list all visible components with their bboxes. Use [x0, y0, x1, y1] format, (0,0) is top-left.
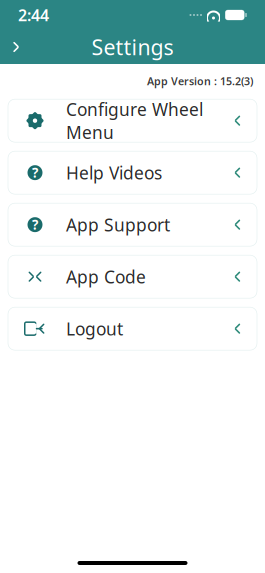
button[interactable]: Back	[0, 30, 32, 64]
staticText: 2:44	[18, 4, 49, 26]
button[interactable]: ?	[8, 151, 257, 194]
button[interactable]: Configure Wheel Menu	[8, 99, 257, 142]
staticText: Settings	[91, 33, 173, 61]
staticText: App Support	[66, 213, 170, 236]
staticText: App Code	[66, 265, 146, 288]
staticText: App Version : 15.2(3)	[147, 74, 253, 88]
staticText: Help Videos	[66, 161, 162, 184]
button[interactable]: Logout	[8, 307, 257, 350]
staticText: Logout	[66, 317, 123, 340]
staticText: ?	[32, 164, 38, 181]
button[interactable]: ?	[8, 203, 257, 246]
staticText: ?	[32, 216, 38, 233]
button[interactable]: App Code	[8, 255, 257, 298]
staticText: Configure Wheel Menu	[66, 98, 203, 144]
